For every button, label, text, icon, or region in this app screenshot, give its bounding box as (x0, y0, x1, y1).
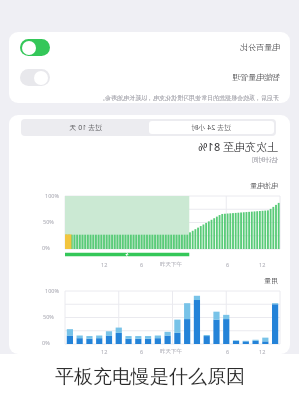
staticText: 100% (45, 192, 60, 199)
button[interactable]: 过去 24 小时 (149, 121, 274, 134)
staticText: 用量 (264, 276, 278, 285)
staticText: 上次充电至 81% (198, 139, 278, 154)
staticText: 6 (226, 261, 230, 268)
staticText: 0% (42, 339, 50, 346)
staticText: 智能电量管理 (232, 72, 280, 82)
staticText: 平板充电慢是什么原因 (55, 365, 245, 389)
staticText: 估计时间 (252, 156, 278, 164)
staticText: 12 (101, 261, 108, 268)
button[interactable]: 过去 10 天 (23, 121, 149, 134)
staticText: 6 (140, 348, 144, 354)
staticText: 100% (45, 287, 60, 294)
staticText: 12 (259, 261, 266, 268)
staticText: 12 (259, 348, 266, 354)
button[interactable]: 智能电量管理 (9, 62, 290, 92)
button[interactable]: 电量百分比 (9, 32, 290, 62)
staticText: 昨天下午 (160, 261, 182, 268)
staticText: 50% (43, 218, 54, 225)
staticText: 过去 10 天 (69, 123, 102, 133)
staticText: 12 (101, 348, 108, 354)
staticText: 昨天下午 (160, 348, 182, 354)
staticText: 6 (226, 348, 230, 354)
staticText: 电量百分比 (240, 42, 280, 52)
staticText: 开启后，系统会根据您的日常使用习惯优化充电，以延长电池寿命。 (99, 94, 279, 102)
staticText: 过去 24 小时 (191, 123, 231, 133)
staticText: 电池电量 (250, 181, 278, 190)
staticText: 0% (42, 244, 50, 251)
staticText: 6 (140, 261, 144, 268)
staticText: 50% (43, 313, 54, 320)
